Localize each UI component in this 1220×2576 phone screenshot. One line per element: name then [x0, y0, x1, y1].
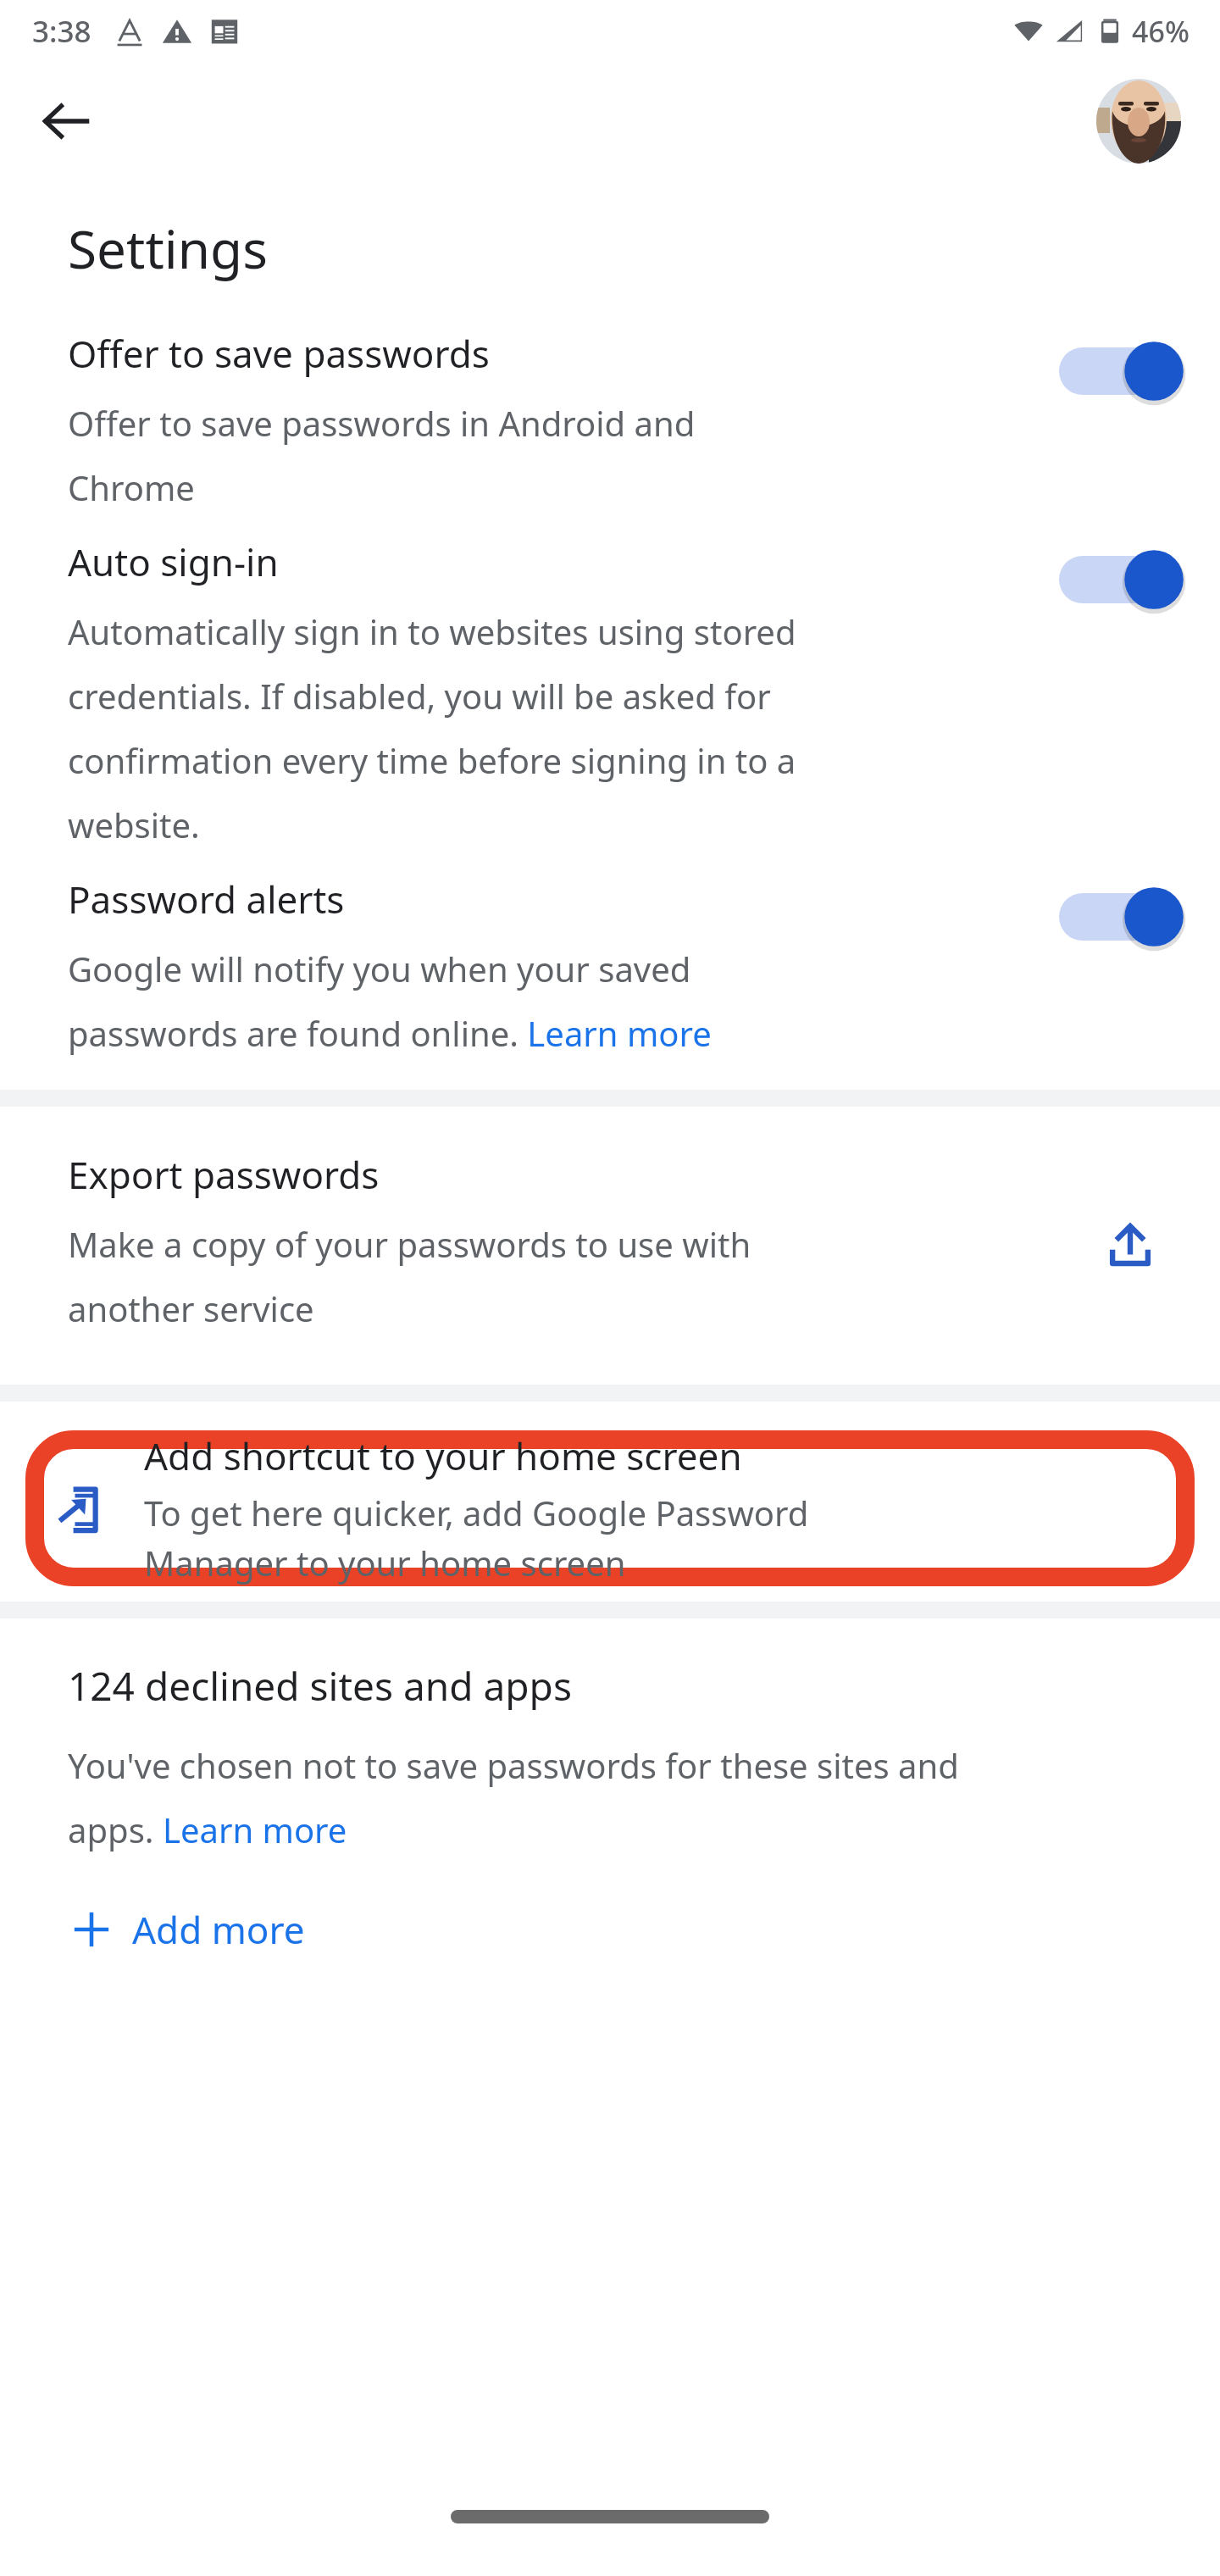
- staticText: Offer to save passwords in Android and: [68, 400, 696, 446]
- staticText: Manager to your home screen: [144, 1540, 626, 1585]
- button[interactable]: Export: [1090, 1204, 1171, 1285]
- staticText: another service: [68, 1285, 314, 1331]
- staticText: Offer to save passwords: [68, 328, 490, 379]
- staticText: Auto sign-in: [68, 536, 279, 587]
- staticText: Password alerts: [68, 874, 345, 924]
- button[interactable]: Toggle: [1059, 340, 1171, 402]
- staticText: Google will notify you when your saved: [68, 946, 691, 991]
- button[interactable]: Toggle: [1059, 885, 1171, 948]
- staticText: Export passwords: [68, 1149, 380, 1200]
- button[interactable]: Offer to save passwords: [0, 316, 1220, 519]
- button[interactable]: Account: [1096, 79, 1181, 164]
- staticText: 3:38: [32, 11, 91, 52]
- staticText: 46%: [1132, 12, 1189, 51]
- staticText: credentials. If disabled, you will be as…: [68, 673, 771, 719]
- button[interactable]: Toggle: [1059, 548, 1171, 611]
- button[interactable]: Back: [25, 80, 107, 162]
- staticText: You've chosen not to save passwords for …: [68, 1742, 959, 1788]
- staticText: confirmation every time before signing i…: [68, 737, 796, 783]
- button[interactable]: Password alerts: [0, 857, 1220, 1065]
- staticText: Chrome: [68, 464, 195, 510]
- staticText: Settings: [68, 213, 268, 284]
- staticText: apps. Learn more: [68, 1807, 347, 1852]
- staticText: website.: [68, 802, 200, 847]
- button[interactable]: Add more: [68, 1894, 308, 1965]
- staticText: 124 declined sites and apps: [68, 1659, 572, 1713]
- staticText: To get here quicker, add Google Password: [144, 1490, 809, 1535]
- staticText: Add more: [132, 1904, 305, 1955]
- button[interactable]: Auto sign-in: [0, 519, 1220, 857]
- staticText: Make a copy of your passwords to use wit…: [68, 1221, 751, 1267]
- button[interactable]: Add shortcut to your home screen: [25, 1430, 1195, 1586]
- button[interactable]: Export passwords: [0, 1107, 1220, 1385]
- staticText: Add shortcut to your home screen: [144, 1430, 742, 1481]
- staticText: passwords are found online. Learn more: [68, 1010, 712, 1056]
- staticText: Automatically sign in to websites using …: [68, 608, 796, 654]
